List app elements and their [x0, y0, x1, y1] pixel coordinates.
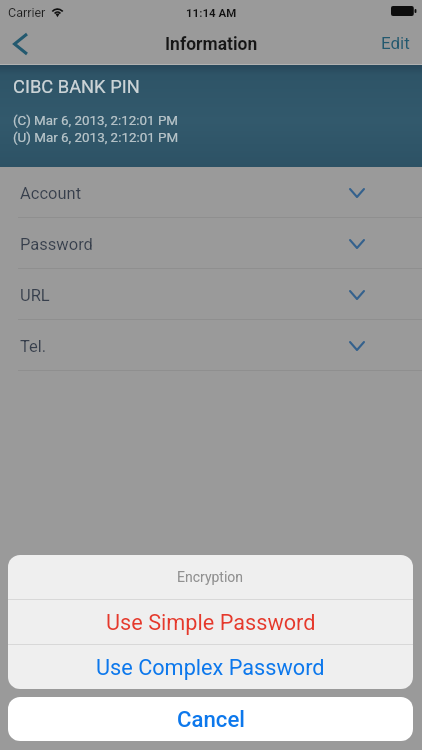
- staticText: Cancel: [177, 706, 245, 732]
- button[interactable]: Tel.: [0, 320, 422, 370]
- staticText: URL: [20, 286, 50, 305]
- staticText: Information: [165, 34, 258, 55]
- button[interactable]: Use Complex Password: [8, 645, 413, 689]
- staticText: Encryption: [177, 569, 244, 585]
- button[interactable]: Password: [0, 218, 422, 268]
- staticText: Tel.: [20, 337, 47, 356]
- button[interactable]: Edit: [367, 25, 422, 64]
- staticText: Use Complex Password: [96, 655, 325, 680]
- staticText: Account: [20, 184, 82, 203]
- button[interactable]: URL: [0, 269, 422, 319]
- staticText: Carrier: [8, 5, 46, 20]
- button[interactable]: Account: [0, 167, 422, 217]
- staticText: (C) Mar 6, 2013, 2:12:01 PM: [13, 113, 179, 129]
- staticText: CIBC BANK PIN: [13, 76, 140, 97]
- button[interactable]: Back: [0, 25, 44, 64]
- button[interactable]: Cancel: [8, 697, 413, 741]
- staticText: Edit: [381, 33, 410, 53]
- staticText: Password: [20, 235, 93, 254]
- button[interactable]: Use Simple Password: [8, 600, 413, 644]
- staticText: 11:14 AM: [186, 6, 237, 19]
- staticText: Use Simple Password: [106, 610, 316, 635]
- staticText: (U) Mar 6, 2013, 2:12:01 PM: [13, 130, 179, 146]
